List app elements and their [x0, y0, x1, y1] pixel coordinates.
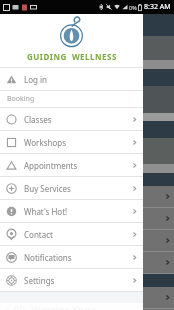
button[interactable]: Classes	[0, 108, 143, 130]
button[interactable]: Contact	[0, 223, 143, 245]
staticText: Classes	[24, 114, 52, 125]
staticText: Workshops	[24, 137, 67, 148]
staticText: Buy Services	[24, 183, 71, 194]
button[interactable]: Appointments	[0, 154, 143, 176]
staticText: What's Hot!	[24, 206, 68, 217]
staticText: Booking	[7, 94, 35, 104]
button[interactable]: Notifications	[0, 246, 143, 268]
staticText: Notifications	[24, 252, 72, 263]
button[interactable]: Buy Services	[0, 177, 143, 199]
staticText: 8:32 AM	[144, 2, 171, 12]
staticText: 0%	[129, 4, 137, 11]
staticText: Contact	[24, 229, 53, 240]
staticText: Settings	[24, 275, 55, 286]
button[interactable]: Workshops	[0, 131, 143, 153]
staticText: Appointments	[24, 160, 78, 171]
staticText: GUIDING WELLNESS	[27, 51, 117, 62]
staticText: Log in	[24, 74, 48, 85]
button[interactable]: What's Hot!	[0, 200, 143, 222]
button[interactable]: Settings	[0, 269, 143, 291]
button[interactable]: Log in	[0, 68, 143, 90]
